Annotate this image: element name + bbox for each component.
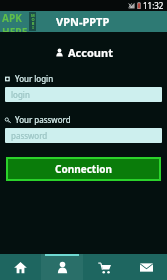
staticText: Your login: [15, 73, 54, 84]
button[interactable]: password: [5, 128, 162, 143]
button[interactable]: Connection: [8, 159, 159, 179]
staticText: login: [11, 89, 30, 100]
staticText: 11:32: [143, 0, 164, 11]
staticText: Connection: [55, 162, 112, 176]
button[interactable]: Cart: [83, 254, 125, 280]
staticText: HERE: [2, 25, 28, 32]
button[interactable]: Account: [41, 254, 83, 280]
button[interactable]: login: [5, 87, 162, 102]
staticText: APK: [2, 11, 22, 25]
staticText: Account: [68, 45, 113, 60]
staticText: password: [11, 130, 48, 141]
staticText: Your password: [15, 114, 71, 125]
button[interactable]: Home: [0, 254, 41, 280]
staticText: VPN-PPTP: [56, 14, 110, 29]
button[interactable]: Account: [0, 45, 167, 60]
staticText: M O B I: [31, 13, 35, 30]
button[interactable]: Messages: [125, 254, 167, 280]
